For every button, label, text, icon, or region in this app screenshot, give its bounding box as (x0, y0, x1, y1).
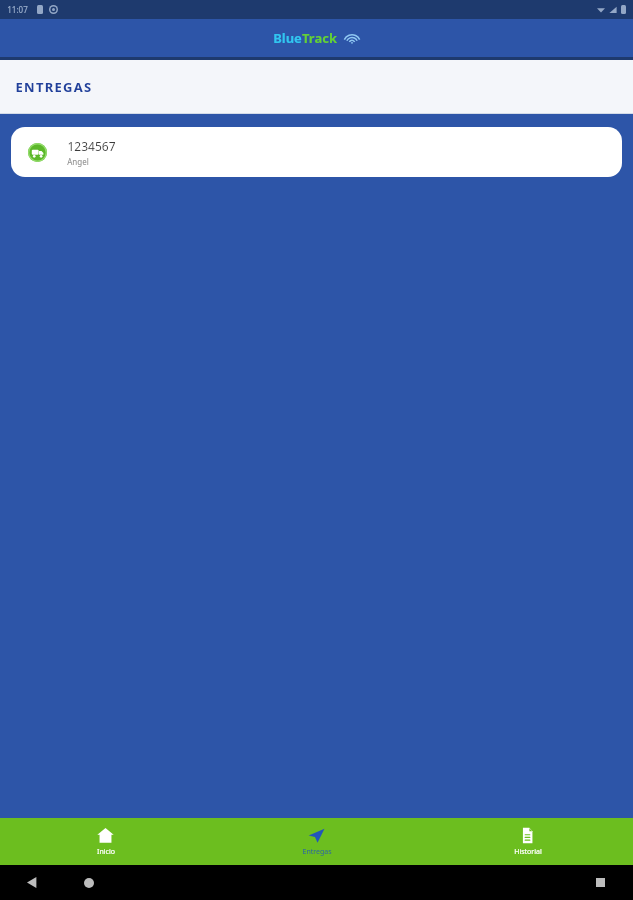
button[interactable]: Historial (422, 818, 633, 865)
button[interactable]: Inicio (0, 818, 211, 865)
button[interactable]: Entregas (211, 818, 422, 865)
staticText: Blue (273, 29, 302, 47)
staticText: 1234567 (67, 138, 116, 154)
staticText: Entregas (302, 847, 332, 857)
staticText: Historial (514, 847, 542, 857)
staticText: 11:07 (7, 4, 28, 15)
other: Home (84, 878, 94, 888)
button[interactable]: 1234567 (11, 127, 622, 177)
staticText: Angel (67, 156, 89, 167)
other: Back (27, 877, 38, 888)
staticText: Inicio (97, 847, 115, 857)
staticText: ENTREGAS (15, 78, 93, 96)
staticText: Track (302, 29, 337, 47)
